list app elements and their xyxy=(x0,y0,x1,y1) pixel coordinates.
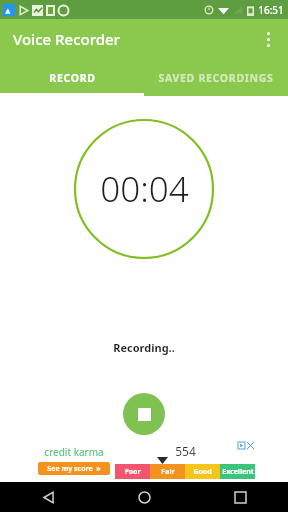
staticText: credit karma xyxy=(44,445,104,459)
staticText: Voice Recorder xyxy=(13,29,120,49)
staticText: Poor xyxy=(124,467,141,477)
staticText: 554 xyxy=(175,443,196,459)
button[interactable]: Home xyxy=(96,482,192,512)
button[interactable]: More options xyxy=(248,19,288,59)
button[interactable]: RECORD xyxy=(0,59,144,96)
staticText: See my score » xyxy=(47,464,101,474)
staticText: Good xyxy=(193,467,212,477)
staticText: 16:51 xyxy=(258,3,284,17)
button[interactable]: SAVED RECORDINGS xyxy=(144,59,288,96)
staticText: SAVED RECORDINGS xyxy=(158,71,274,85)
button[interactable]: Recent apps xyxy=(192,482,288,512)
button[interactable]: Credit Karma advertisement xyxy=(33,441,255,479)
staticText: Excellent xyxy=(222,467,254,477)
button[interactable]: Stop recording xyxy=(123,393,165,435)
staticText: Fair xyxy=(161,467,175,477)
button[interactable]: Back xyxy=(0,482,96,512)
staticText: 00:04 xyxy=(100,165,189,213)
staticText: Recording.. xyxy=(113,340,175,355)
staticText: RECORD xyxy=(49,71,96,85)
